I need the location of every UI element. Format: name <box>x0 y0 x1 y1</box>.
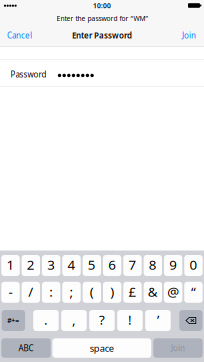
staticText: : <box>49 283 53 300</box>
staticText: ! <box>128 311 132 328</box>
button[interactable]: Join <box>153 338 203 358</box>
button[interactable]: 1 <box>1 255 20 276</box>
button[interactable]: & <box>144 282 162 303</box>
staticText: 3 <box>47 256 55 273</box>
button[interactable]: ? <box>89 310 115 331</box>
staticText: Enter Password <box>72 30 132 41</box>
staticText: 4 <box>67 256 75 273</box>
staticText: . <box>44 311 48 328</box>
button[interactable]: ; <box>62 282 81 303</box>
staticText: “ <box>191 283 196 300</box>
staticText: 5 <box>88 256 96 273</box>
staticText: ? <box>99 311 105 328</box>
staticText: Join <box>182 30 196 41</box>
staticText: Cancel <box>7 30 32 41</box>
staticText: 8 <box>149 256 157 273</box>
staticText: 9 <box>169 256 177 273</box>
staticText: / <box>28 283 33 300</box>
button[interactable]: Join <box>170 26 196 44</box>
button[interactable]: 5 <box>83 255 101 276</box>
staticText: £ <box>128 283 136 300</box>
button[interactable]: 4 <box>62 255 81 276</box>
staticText: ; <box>69 283 73 300</box>
button[interactable]: Cancel <box>7 26 43 44</box>
staticText: ( <box>90 283 94 300</box>
staticText: Enter the password for “WM” <box>56 14 147 23</box>
staticText: 7 <box>128 256 136 273</box>
button[interactable]: 2 <box>22 255 40 276</box>
staticText: 10:00 <box>93 1 111 10</box>
button[interactable]: 7 <box>123 255 142 276</box>
button[interactable]: 6 <box>103 255 121 276</box>
button[interactable]: space <box>52 338 151 358</box>
staticText: 0 <box>189 256 197 273</box>
button[interactable]: ABC <box>1 338 51 358</box>
button[interactable]: 0 <box>184 255 203 276</box>
button[interactable]: 9 <box>164 255 182 276</box>
button[interactable]: , <box>61 310 87 331</box>
button[interactable]: Password <box>0 60 204 86</box>
button[interactable]: / <box>22 282 40 303</box>
staticText: - <box>8 283 12 300</box>
button[interactable]: ’ <box>145 310 171 331</box>
staticText: 2 <box>27 256 35 273</box>
button[interactable]: Delete <box>179 310 202 331</box>
button[interactable]: : <box>42 282 60 303</box>
button[interactable]: 8 <box>144 255 162 276</box>
staticText: #+= <box>7 316 19 325</box>
staticText: ABC <box>18 343 33 353</box>
staticText: , <box>72 311 76 328</box>
staticText: & <box>148 283 158 300</box>
staticText: space <box>90 342 114 354</box>
staticText: ’ <box>157 311 159 328</box>
button[interactable]: “ <box>184 282 203 303</box>
staticText: Join <box>171 343 185 353</box>
button[interactable]: . <box>33 310 59 331</box>
staticText: ) <box>110 283 114 300</box>
staticText: 6 <box>108 256 116 273</box>
button[interactable]: - <box>1 282 20 303</box>
button[interactable]: 3 <box>42 255 60 276</box>
button[interactable]: ! <box>117 310 143 331</box>
staticText: @ <box>167 283 179 300</box>
staticText: 1 <box>6 256 14 273</box>
button[interactable]: @ <box>164 282 182 303</box>
button[interactable]: Symbols <box>2 310 25 331</box>
button[interactable]: ( <box>83 282 101 303</box>
button[interactable]: ) <box>103 282 121 303</box>
staticText: Password <box>10 69 46 80</box>
button[interactable]: £ <box>123 282 142 303</box>
